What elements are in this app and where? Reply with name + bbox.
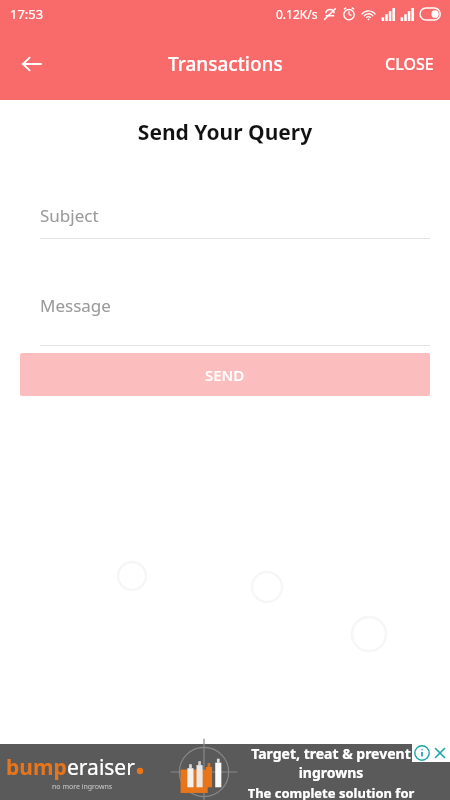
staticText: bump	[6, 753, 67, 782]
staticText: 17:53	[10, 5, 44, 23]
button[interactable]: Message	[20, 294, 430, 346]
button[interactable]: Close ad	[432, 745, 448, 761]
button[interactable]: Advertisement	[0, 744, 450, 800]
staticText: Transactions	[168, 51, 283, 77]
staticText: no more ingrowns	[52, 782, 113, 792]
staticText: Message	[40, 294, 111, 317]
button[interactable]: Back	[8, 40, 56, 88]
staticText: CLOSE	[385, 53, 434, 75]
staticText: Target, treat & prevent ingrowns	[232, 744, 430, 782]
staticText: The complete solution for	[232, 784, 430, 800]
button[interactable]: SEND	[20, 353, 430, 396]
staticText: SEND	[205, 365, 245, 385]
staticText: Subject	[40, 204, 99, 227]
button[interactable]: CLOSE	[369, 41, 450, 87]
staticText: 0.12K/s	[276, 6, 318, 22]
staticText: Send Your Query	[0, 118, 450, 147]
button[interactable]: Subject	[20, 204, 430, 239]
staticText: eraiser	[67, 753, 135, 782]
button[interactable]: Ad info	[414, 745, 430, 761]
